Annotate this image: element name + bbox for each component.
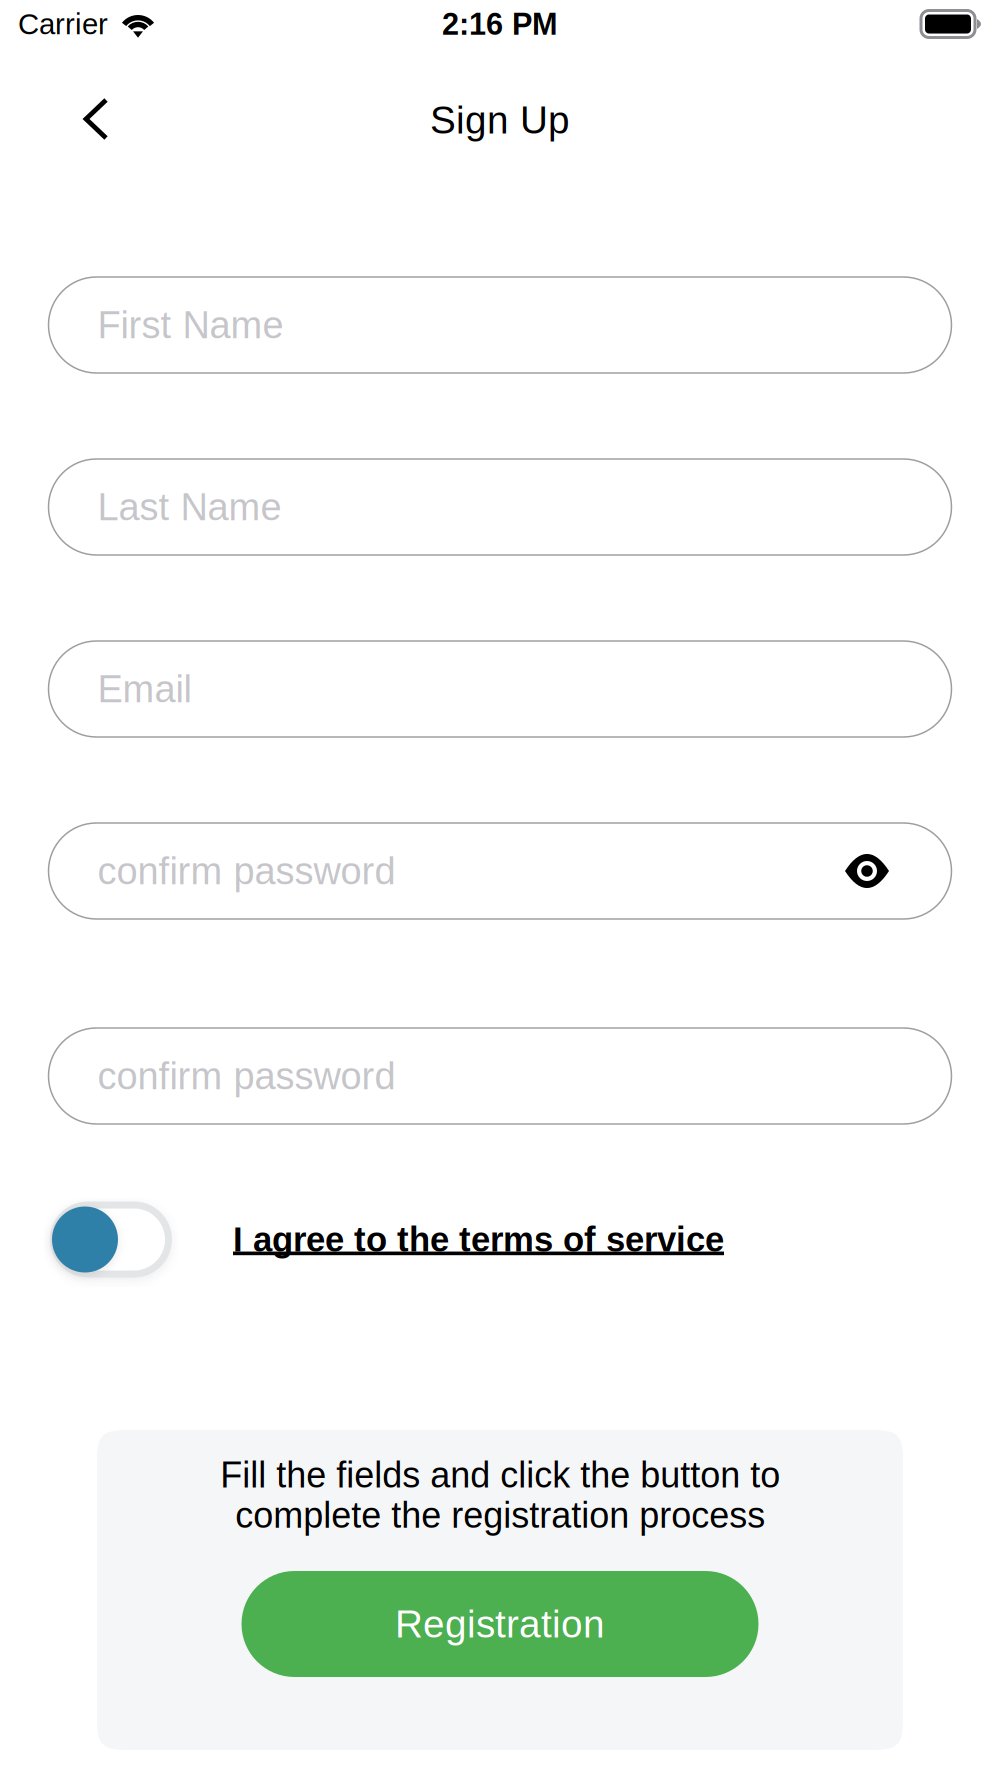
staticText: confirm password [97,1055,395,1097]
staticText: First Name [97,304,283,346]
staticText: 2:16 PM [442,7,558,41]
staticText: Email [97,668,191,710]
button[interactable]: Back [58,54,134,142]
button[interactable]: confirm password [48,1028,951,1124]
staticText: Sign Up [430,98,570,142]
button[interactable]: Email [48,641,951,737]
staticText: Last Name [97,486,281,528]
staticText: confirm password [97,850,395,892]
staticText: Carrier [18,8,108,40]
staticText: Registration [395,1602,605,1646]
button[interactable]: Registration [241,1571,758,1677]
button[interactable]: I agree to the terms of service [50,1201,172,1277]
button[interactable]: confirm password [48,823,951,919]
button[interactable]: I agree to the terms of service [172,1220,734,1259]
staticText: Fill the fields and click the button to … [220,1455,780,1535]
button[interactable]: Show password [832,843,901,898]
staticText: I agree to the terms of service [233,1220,724,1259]
button[interactable]: First Name [48,277,951,373]
button[interactable]: Last Name [48,459,951,555]
